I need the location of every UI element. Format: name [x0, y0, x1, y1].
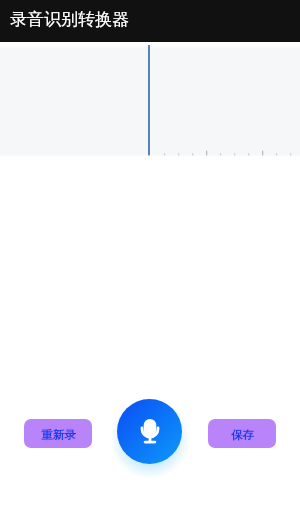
button[interactable]: Record [117, 399, 182, 464]
button[interactable]: 重新录 [24, 419, 92, 448]
staticText: 重新录 [41, 428, 76, 442]
staticText: 录音识别转换器 [10, 9, 129, 30]
button[interactable]: 保存 [208, 419, 276, 448]
staticText: 保存 [231, 428, 254, 442]
